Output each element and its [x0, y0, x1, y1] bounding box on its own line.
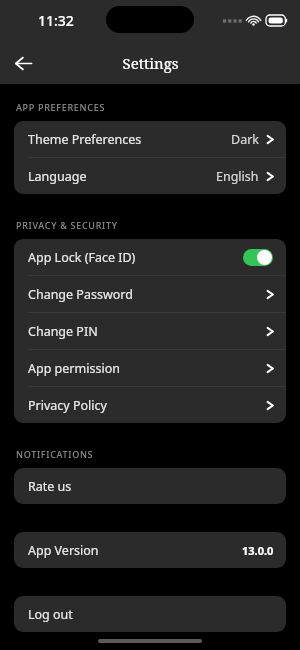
staticText: PRIVACY & SECURITY	[16, 219, 118, 231]
staticText: Log out	[28, 606, 73, 623]
staticText: 11:32	[38, 11, 74, 30]
staticText: App Version	[28, 542, 99, 559]
button[interactable]: Change Password	[14, 276, 286, 312]
button[interactable]: Change PIN	[14, 313, 286, 349]
button[interactable]: Theme Preferences	[14, 121, 286, 157]
button[interactable]: Back	[6, 46, 40, 80]
button[interactable]: Rate us	[14, 468, 286, 504]
button[interactable]: Log out	[14, 596, 286, 632]
staticText: App Lock (Face ID)	[28, 249, 136, 266]
staticText: 13.0.0	[242, 543, 274, 558]
staticText: App permission	[28, 360, 120, 377]
staticText: English	[216, 168, 259, 185]
staticText: Change PIN	[28, 323, 98, 340]
staticText: Privacy Policy	[28, 397, 107, 414]
button[interactable]: App Lock (Face ID)	[14, 239, 286, 275]
staticText: APP PREFERENCES	[16, 101, 106, 113]
button[interactable]: App permission	[14, 350, 286, 386]
staticText: Rate us	[28, 478, 72, 495]
button[interactable]: App Lock toggle	[243, 249, 273, 266]
button[interactable]: App Version	[14, 532, 286, 568]
button[interactable]: Language	[14, 158, 286, 194]
staticText: Language	[28, 168, 87, 185]
button[interactable]: Privacy Policy	[14, 387, 286, 423]
staticText: Dark	[231, 131, 259, 148]
staticText: Theme Preferences	[28, 131, 142, 148]
staticText: Settings	[122, 53, 179, 73]
staticText: NOTIFICATIONS	[16, 448, 94, 460]
staticText: Change Password	[28, 286, 133, 303]
